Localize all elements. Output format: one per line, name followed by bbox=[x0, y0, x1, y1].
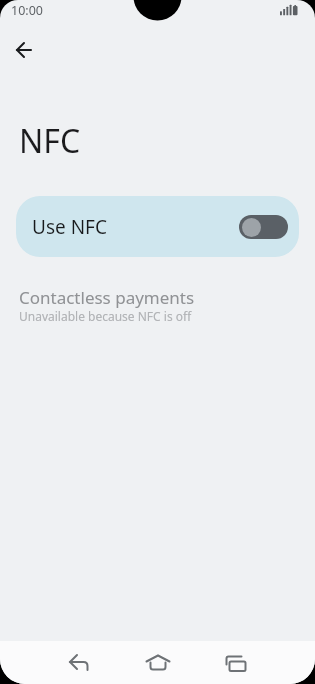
staticText: Unavailable because NFC is off bbox=[19, 308, 192, 324]
staticText: NFC bbox=[19, 119, 81, 163]
button[interactable] bbox=[8, 34, 40, 66]
button[interactable] bbox=[142, 650, 174, 682]
staticText: Use NFC bbox=[32, 214, 107, 240]
staticText: 10:00 bbox=[11, 2, 43, 19]
button[interactable] bbox=[220, 646, 252, 678]
button[interactable] bbox=[63, 649, 95, 681]
button[interactable]: Use NFC bbox=[16, 196, 299, 257]
staticText: Contactless payments bbox=[19, 286, 195, 309]
button[interactable]: Contactless payments bbox=[0, 283, 315, 328]
